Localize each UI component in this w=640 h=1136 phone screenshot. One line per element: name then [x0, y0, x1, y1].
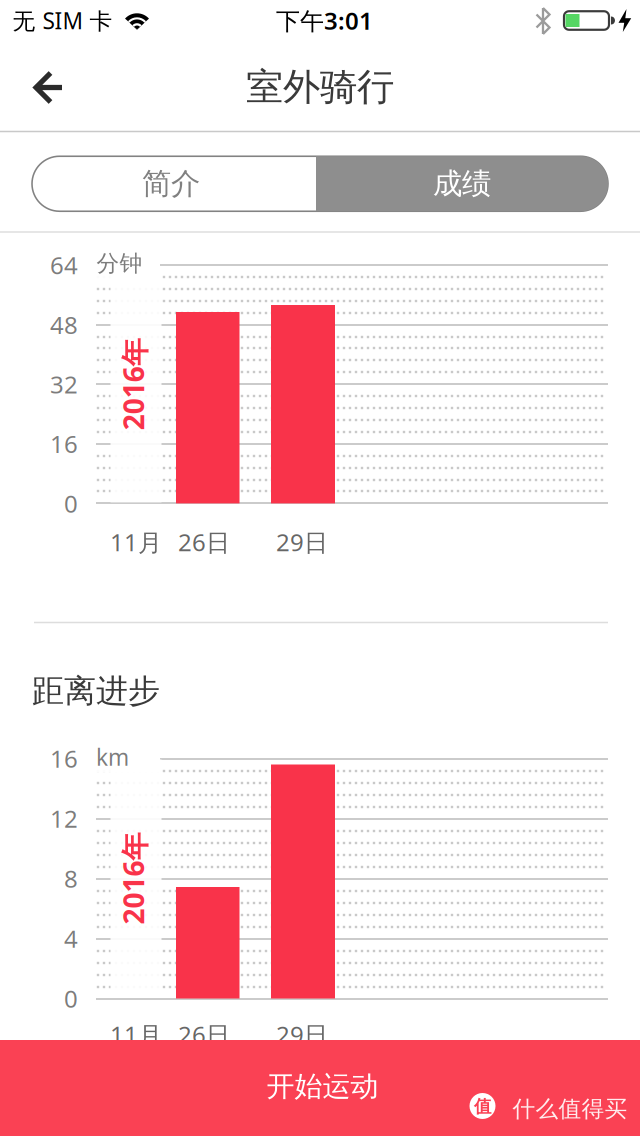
staticText: 成绩: [433, 166, 491, 202]
staticText: 16: [50, 428, 78, 460]
staticText: 值: [474, 1096, 491, 1117]
staticText: 距离进步: [32, 671, 160, 711]
button[interactable]: 简介: [31, 156, 311, 211]
staticText: 分钟: [96, 250, 142, 277]
staticText: 2016年: [87, 860, 179, 897]
staticText: 11月: [110, 1019, 162, 1050]
staticText: 无 SIM 卡: [12, 5, 112, 35]
staticText: 室外骑行: [246, 64, 394, 110]
button[interactable]: 返回: [28, 57, 88, 117]
staticText: 8: [64, 863, 78, 894]
staticText: 32: [50, 368, 78, 400]
staticText: 11月: [110, 526, 162, 558]
staticText: 下午3:01: [276, 5, 373, 36]
staticText: 26日: [178, 526, 230, 558]
staticText: 2016年: [87, 366, 179, 403]
staticText: 简介: [142, 166, 200, 202]
staticText: 16: [50, 743, 78, 774]
staticText: 什么值得买: [512, 1095, 627, 1123]
button[interactable]: 开始运动: [0, 1040, 640, 1136]
staticText: 0: [64, 487, 78, 519]
staticText: 29日: [276, 526, 328, 558]
button[interactable]: 成绩: [316, 156, 608, 211]
staticText: 12: [50, 803, 78, 834]
staticText: 0: [64, 983, 78, 1014]
staticText: 29日: [276, 1019, 328, 1050]
staticText: 48: [50, 309, 78, 341]
staticText: 64: [50, 249, 78, 281]
staticText: 26日: [178, 1019, 230, 1050]
staticText: km: [96, 742, 129, 772]
staticText: 开始运动: [266, 1069, 378, 1104]
staticText: 4: [64, 923, 78, 954]
